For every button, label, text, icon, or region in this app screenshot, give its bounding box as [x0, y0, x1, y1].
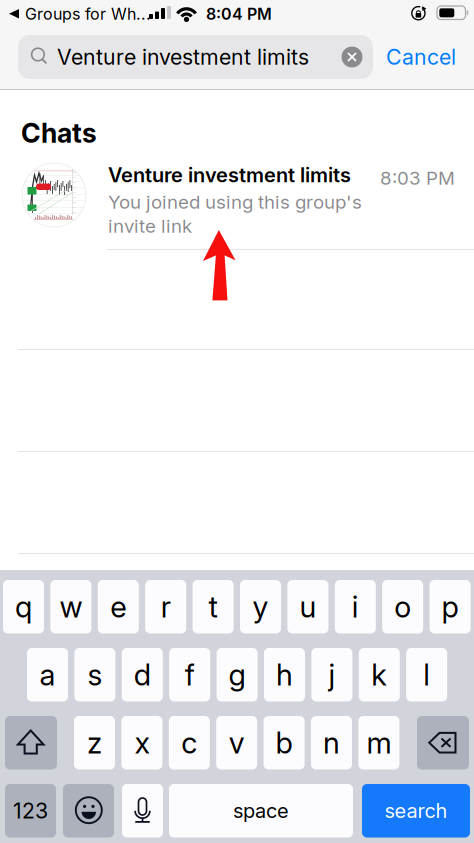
staticText: c: [181, 725, 197, 760]
button[interactable]: search: [362, 784, 470, 837]
button[interactable]: s: [74, 648, 115, 701]
staticText: j: [328, 657, 335, 692]
button[interactable]: z: [74, 716, 115, 769]
button[interactable]: Back to Groups for WhatsApp: [9, 9, 21, 19]
staticText: m: [366, 725, 391, 760]
button[interactable]: Delete: [417, 716, 469, 769]
button[interactable]: j: [311, 648, 352, 701]
staticText: v: [229, 725, 245, 760]
button[interactable]: w: [50, 580, 91, 633]
staticText: invite link: [108, 215, 192, 237]
staticText: y: [252, 589, 268, 624]
staticText: Groups for Wh...: [25, 4, 151, 24]
staticText: s: [87, 657, 102, 692]
button[interactable]: i: [335, 580, 376, 633]
button[interactable]: o: [382, 580, 423, 633]
button[interactable]: p: [430, 580, 471, 633]
staticText: You joined using this group's: [108, 191, 362, 213]
button[interactable]: d: [122, 648, 163, 701]
button[interactable]: c: [169, 716, 210, 769]
staticText: search: [384, 799, 447, 823]
staticText: u: [299, 589, 316, 624]
staticText: Chats: [21, 117, 97, 149]
staticText: z: [87, 725, 102, 760]
staticText: g: [229, 657, 246, 692]
staticText: d: [134, 657, 151, 692]
button[interactable]: Cancel: [386, 35, 462, 79]
button[interactable]: u: [287, 580, 328, 633]
staticText: Venture investment limits: [57, 44, 309, 70]
staticText: p: [442, 589, 459, 624]
staticText: 123: [13, 798, 48, 824]
staticText: space: [233, 799, 289, 823]
staticText: Cancel: [386, 44, 456, 70]
button[interactable]: t: [193, 580, 234, 633]
staticText: b: [276, 725, 293, 760]
button[interactable]: Shift: [5, 716, 57, 769]
staticText: 8:03 PM: [380, 167, 455, 189]
staticText: Venture investment limits: [108, 163, 351, 187]
staticText: o: [394, 589, 411, 624]
staticText: n: [323, 725, 340, 760]
button[interactable]: y: [240, 580, 281, 633]
button[interactable]: k: [359, 648, 400, 701]
staticText: k: [371, 657, 387, 692]
staticText: l: [423, 657, 430, 692]
button[interactable]: x: [121, 716, 162, 769]
button[interactable]: space: [169, 784, 353, 837]
staticText: e: [110, 589, 126, 624]
button[interactable]: m: [358, 716, 399, 769]
button[interactable]: Dictation: [122, 784, 163, 837]
staticText: t: [209, 589, 218, 624]
staticText: x: [134, 725, 149, 760]
button[interactable]: h: [264, 648, 305, 701]
button[interactable]: 123: [5, 784, 56, 837]
button[interactable]: Venture investment limits: [0, 0, 474, 247]
button[interactable]: b: [264, 716, 305, 769]
button[interactable]: v: [216, 716, 257, 769]
staticText: a: [39, 657, 55, 692]
button[interactable]: l: [406, 648, 447, 701]
button[interactable]: e: [98, 580, 139, 633]
staticText: 8:04 PM: [206, 4, 272, 24]
button[interactable]: a: [27, 648, 68, 701]
button[interactable]: Emoji keyboard: [63, 784, 114, 837]
button[interactable]: q: [3, 580, 44, 633]
staticText: f: [185, 657, 195, 692]
button[interactable]: g: [217, 648, 258, 701]
staticText: i: [352, 589, 359, 624]
staticText: w: [59, 589, 82, 624]
button[interactable]: f: [169, 648, 210, 701]
button[interactable]: Clear text: [337, 42, 367, 72]
button[interactable]: n: [311, 716, 352, 769]
button[interactable]: r: [145, 580, 186, 633]
staticText: q: [15, 589, 32, 624]
staticText: h: [276, 657, 293, 692]
staticText: r: [161, 589, 171, 624]
